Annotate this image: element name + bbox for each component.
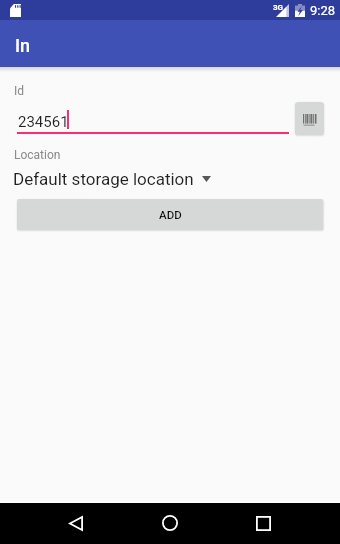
staticText: Default storage location <box>13 169 194 189</box>
staticText: 234561 <box>18 113 69 131</box>
button[interactable]: Default storage location <box>0 166 340 192</box>
staticText: Location <box>14 148 61 162</box>
button[interactable]: Home <box>152 507 188 539</box>
staticText: 3G <box>273 3 284 12</box>
button[interactable]: Back <box>58 507 94 539</box>
button[interactable]: ADD <box>17 199 323 230</box>
staticText: Id <box>14 84 25 98</box>
staticText: 9:28 <box>310 3 336 18</box>
button[interactable]: Scan barcode <box>295 102 324 135</box>
staticText: In <box>15 35 31 56</box>
staticText: ADD <box>159 208 182 221</box>
button[interactable]: Recents <box>245 507 281 539</box>
